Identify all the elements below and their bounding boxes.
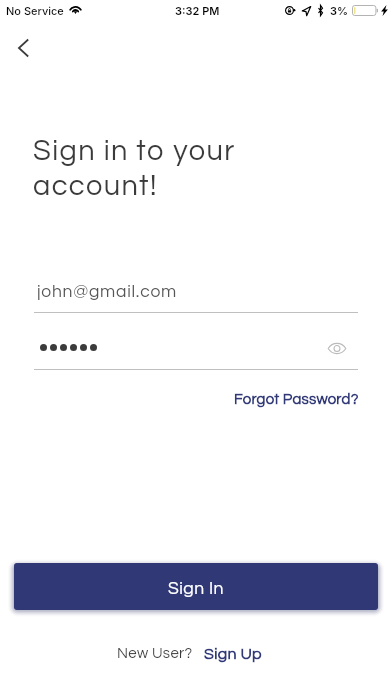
button[interactable]: Back bbox=[5, 29, 43, 67]
button[interactable]: Sign Up bbox=[204, 646, 262, 662]
button[interactable]: Show password bbox=[321, 332, 353, 364]
staticText: Sign In bbox=[168, 580, 224, 598]
staticText: No Service bbox=[6, 4, 64, 17]
staticText: New User? bbox=[117, 646, 193, 661]
button[interactable] bbox=[34, 331, 314, 369]
staticText: 3:32 PM bbox=[175, 4, 220, 17]
button[interactable] bbox=[34, 274, 358, 312]
button[interactable]: Sign In bbox=[14, 563, 378, 610]
staticText: 3% bbox=[330, 4, 349, 17]
button[interactable]: Forgot Password? bbox=[228, 389, 365, 410]
staticText: Forgot Password? bbox=[234, 392, 359, 407]
staticText: Sign Up bbox=[204, 646, 262, 662]
staticText: john@gmail.com bbox=[37, 283, 177, 301]
staticText: Sign in to your account! bbox=[33, 136, 236, 201]
